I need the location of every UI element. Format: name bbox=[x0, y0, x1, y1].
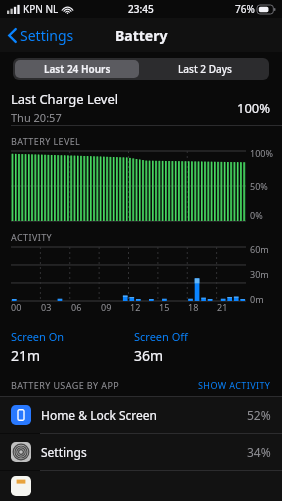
staticText: 60m bbox=[250, 243, 269, 255]
staticText: 76% bbox=[235, 2, 255, 16]
staticText: 0m bbox=[250, 293, 264, 305]
staticText: Battery bbox=[115, 26, 168, 45]
staticText: Settings bbox=[20, 26, 74, 45]
button[interactable]: Home & Lock Screen bbox=[0, 397, 282, 433]
button[interactable]: Last 2 Days bbox=[141, 58, 269, 80]
staticText: 12 bbox=[130, 301, 141, 313]
staticText: Home & Lock Screen bbox=[41, 407, 158, 423]
staticText: Screen On bbox=[11, 329, 65, 344]
staticText: 23:45 bbox=[128, 2, 154, 16]
staticText: 36m bbox=[134, 346, 164, 365]
staticText: 03 bbox=[41, 301, 52, 313]
staticText: BATTERY USAGE BY APP bbox=[11, 379, 120, 391]
staticText: Last 24 Hours bbox=[44, 62, 111, 76]
button[interactable]: Settings bbox=[0, 434, 282, 470]
button[interactable]: Last 24 Hours bbox=[15, 60, 139, 78]
staticText: 0% bbox=[250, 209, 263, 221]
button[interactable]: Settings bbox=[6, 22, 76, 49]
staticText: Last 2 Days bbox=[178, 62, 232, 76]
staticText: 50% bbox=[250, 180, 268, 192]
staticText: Thu 20:57 bbox=[11, 110, 62, 125]
staticText: 100% bbox=[250, 147, 273, 159]
staticText: 21 bbox=[217, 301, 228, 313]
staticText: 09 bbox=[101, 301, 112, 313]
staticText: 18 bbox=[188, 301, 199, 313]
button[interactable]: Last Charge Level bbox=[0, 90, 282, 125]
staticText: 15 bbox=[159, 301, 170, 313]
staticText: Screen Off bbox=[134, 329, 188, 344]
staticText: 21m bbox=[11, 346, 41, 365]
staticText: 100% bbox=[237, 99, 271, 117]
staticText: 06 bbox=[71, 301, 82, 313]
staticText: Settings bbox=[41, 444, 87, 460]
staticText: Last Charge Level bbox=[11, 90, 119, 108]
staticText: BATTERY LEVEL bbox=[11, 135, 81, 147]
staticText: 00 bbox=[11, 301, 22, 313]
staticText: 34% bbox=[247, 444, 271, 460]
staticText: 30m bbox=[250, 268, 269, 280]
button[interactable] bbox=[0, 471, 282, 501]
staticText: SHOW ACTIVITY bbox=[198, 379, 271, 391]
button[interactable]: SHOW ACTIVITY bbox=[198, 379, 271, 391]
staticText: 52% bbox=[247, 407, 271, 423]
staticText: KPN NL bbox=[23, 2, 59, 16]
staticText: ACTIVITY bbox=[11, 231, 53, 243]
